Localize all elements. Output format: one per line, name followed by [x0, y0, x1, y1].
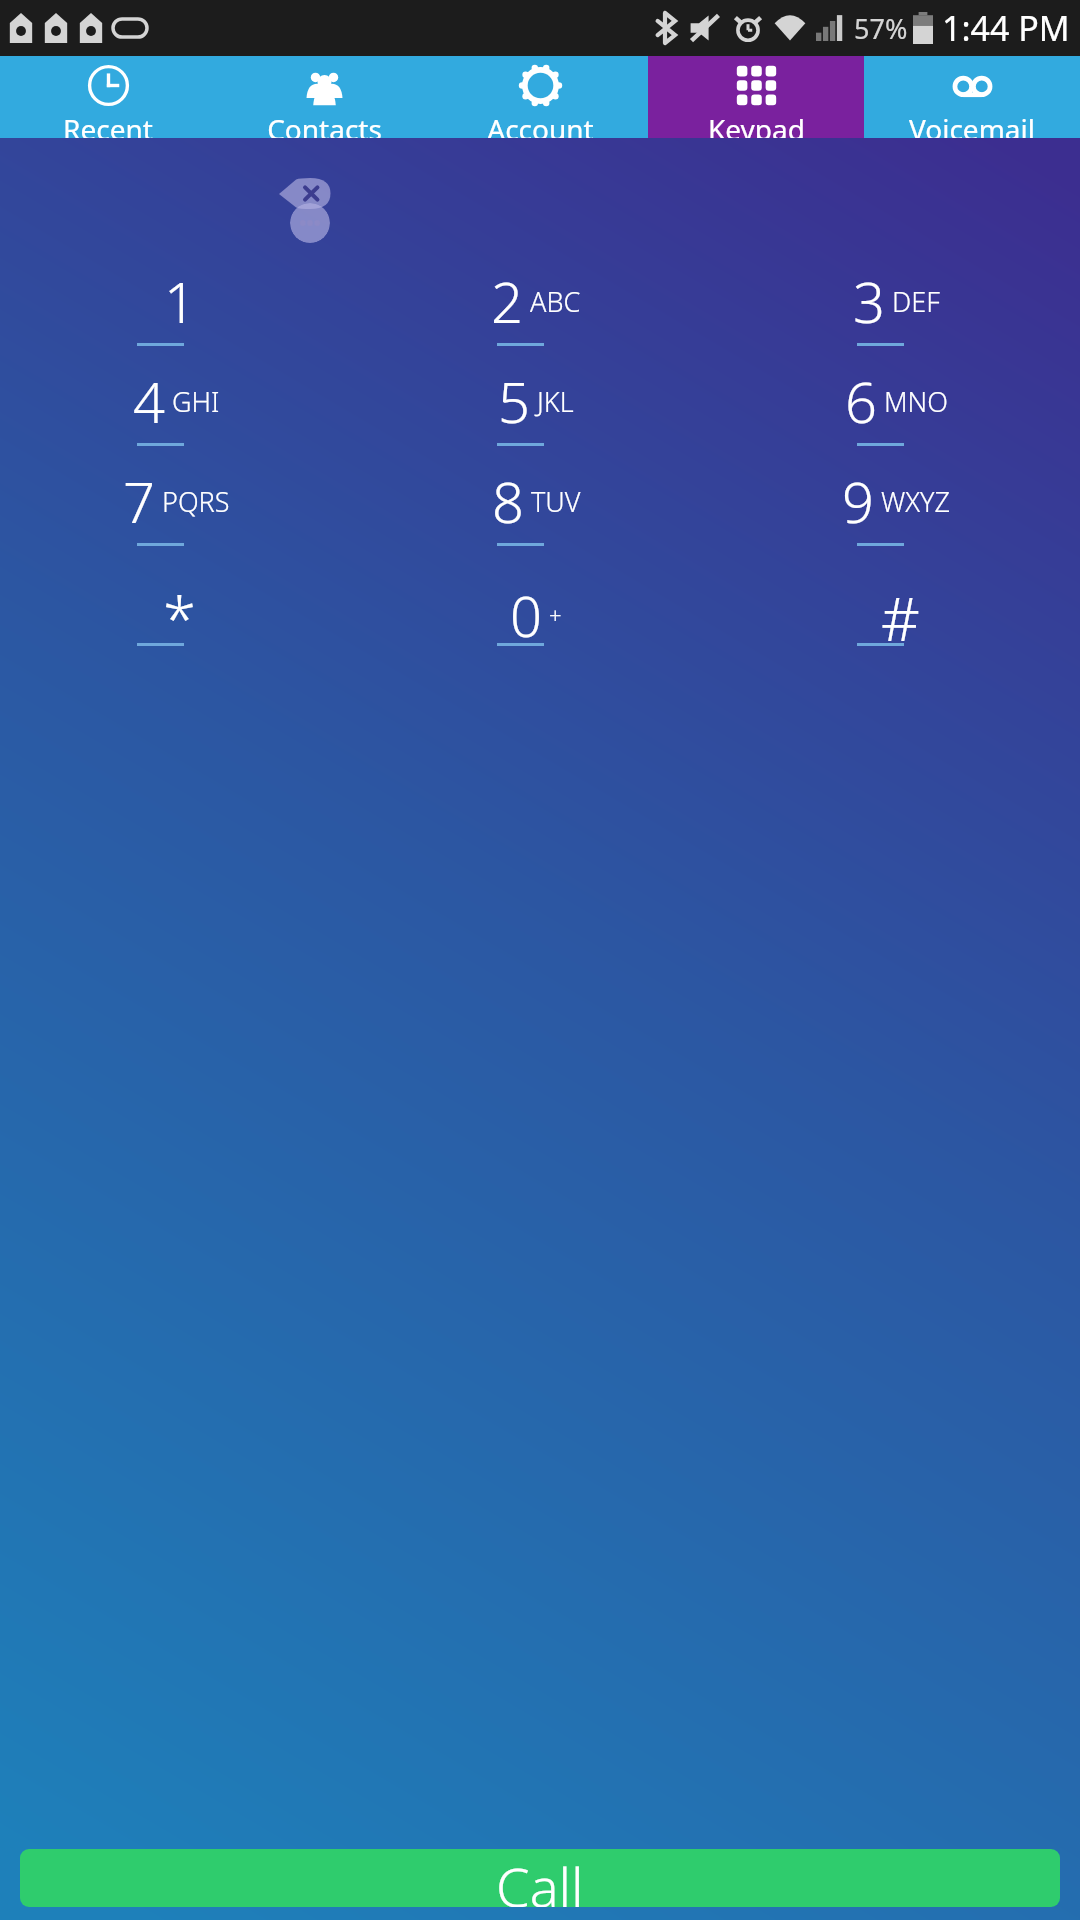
- button[interactable]: 0: [360, 563, 720, 663]
- button[interactable]: Backspace: [279, 178, 331, 209]
- button[interactable]: 5: [360, 363, 720, 463]
- staticText: +: [549, 600, 562, 630]
- staticText: *: [163, 577, 197, 659]
- button[interactable]: Recent: [0, 56, 216, 138]
- staticText: ABC: [530, 283, 581, 320]
- button[interactable]: *: [0, 563, 360, 663]
- staticText: MNO: [884, 383, 948, 420]
- button[interactable]: More options: [290, 203, 330, 243]
- staticText: 1:44 PM: [942, 5, 1070, 51]
- staticText: 7: [123, 463, 155, 539]
- staticText: Contacts: [267, 110, 382, 138]
- staticText: Recent: [63, 110, 153, 138]
- staticText: GHI: [172, 383, 220, 420]
- button[interactable]: 8: [360, 463, 720, 563]
- staticText: 1: [164, 263, 196, 339]
- staticText: 4: [133, 363, 165, 439]
- button[interactable]: #: [720, 563, 1080, 663]
- staticText: PQRS: [162, 483, 230, 520]
- staticText: 3: [853, 263, 885, 339]
- staticText: WXYZ: [881, 483, 951, 520]
- staticText: JKL: [537, 383, 574, 420]
- staticText: Call: [496, 1849, 584, 1907]
- staticText: 8: [492, 463, 524, 539]
- button[interactable]: 2: [360, 263, 720, 363]
- staticText: 57%: [854, 10, 908, 47]
- button[interactable]: Keypad: [648, 56, 864, 138]
- staticText: 2: [491, 263, 523, 339]
- button[interactable]: 7: [0, 463, 360, 563]
- staticText: 9: [842, 463, 874, 539]
- staticText: TUV: [531, 483, 581, 520]
- button[interactable]: Account: [432, 56, 648, 138]
- button[interactable]: 1: [0, 263, 360, 363]
- staticText: 0: [510, 577, 542, 653]
- button[interactable]: 3: [720, 263, 1080, 363]
- button[interactable]: 6: [720, 363, 1080, 463]
- staticText: #: [881, 577, 920, 659]
- staticText: Keypad: [708, 110, 805, 138]
- button[interactable]: 9: [720, 463, 1080, 563]
- staticText: DEF: [892, 283, 940, 320]
- staticText: 6: [845, 363, 877, 439]
- staticText: 5: [498, 363, 530, 439]
- staticText: Voicemail: [909, 110, 1035, 138]
- button[interactable]: Call: [20, 1849, 1060, 1907]
- button[interactable]: 4: [0, 363, 360, 463]
- button[interactable]: Voicemail: [864, 56, 1080, 138]
- staticText: Account: [487, 110, 594, 138]
- button[interactable]: Contacts: [216, 56, 432, 138]
